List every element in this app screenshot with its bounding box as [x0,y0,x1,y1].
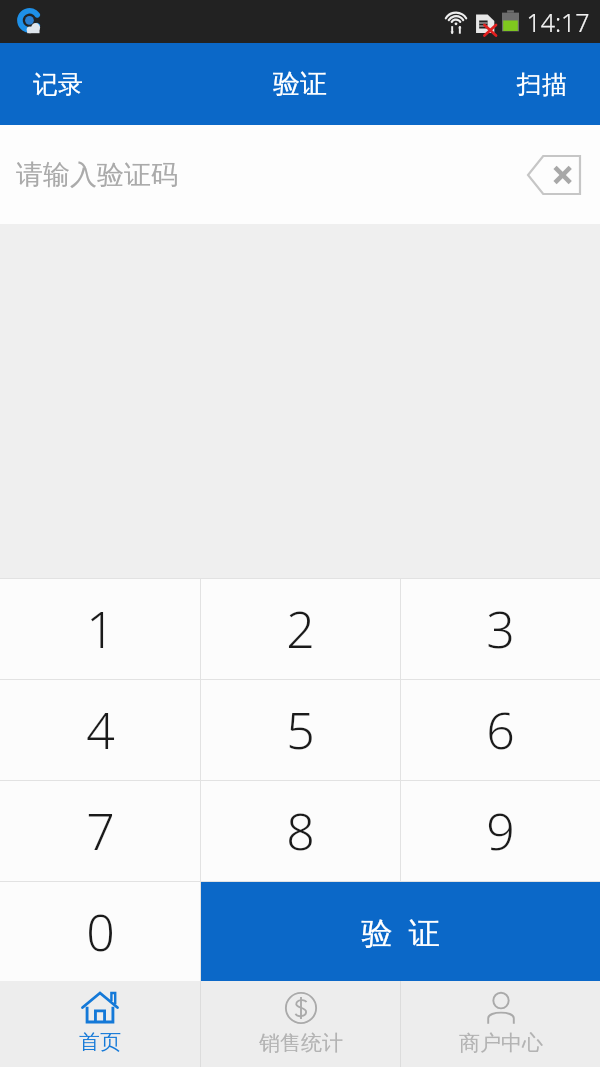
staticText: 14:17 [526,5,590,39]
button[interactable]: 3 [401,579,600,679]
button[interactable]: 5 [201,680,400,780]
button[interactable]: 8 [201,781,400,881]
staticText: 4 [86,696,115,764]
button[interactable]: 商户中心 [401,981,600,1067]
staticText: 请输入验证码 [16,158,178,192]
button[interactable]: 验证 [243,43,357,125]
button[interactable]: 2 [201,579,400,679]
staticText: 1 [86,595,115,663]
staticText: 8 [286,797,315,865]
staticText: 5 [286,696,315,764]
staticText: 验证 [273,67,327,101]
staticText: 商户中心 [459,1030,543,1056]
staticText: 3 [486,595,515,663]
button[interactable]: 0 [0,882,200,981]
button[interactable]: 首页 [0,981,200,1067]
button[interactable]: 记录 [0,43,116,125]
button[interactable]: 销售统计 [201,981,400,1067]
button[interactable]: Clear [524,151,584,199]
staticText: 首页 [79,1029,121,1055]
staticText: 7 [86,797,115,865]
staticText: 验 证 [361,911,440,953]
staticText: 2 [286,595,315,663]
staticText: 9 [486,797,515,865]
button[interactable]: 扫描 [484,43,600,125]
staticText: 扫描 [517,69,567,100]
button[interactable]: 4 [0,680,200,780]
button[interactable]: 1 [0,579,200,679]
staticText: 0 [86,898,115,966]
staticText: 记录 [33,69,83,100]
button[interactable]: 9 [401,781,600,881]
button[interactable]: 6 [401,680,600,780]
staticText: 销售统计 [259,1030,343,1056]
button[interactable]: 7 [0,781,200,881]
staticText: 6 [486,696,515,764]
button[interactable]: 验 证 [201,882,600,981]
